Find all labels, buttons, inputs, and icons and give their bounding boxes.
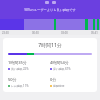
staticText: 浅い睡眠 22%	[11, 67, 29, 71]
staticText: 50分	[8, 77, 17, 82]
button[interactable]: 4時間54分	[50, 60, 92, 71]
button[interactable]: 50分	[8, 77, 50, 88]
staticText: 深い睡眠 67%	[53, 67, 71, 71]
button[interactable]: 1時間35分	[8, 60, 50, 71]
staticText: 4時間54分	[50, 60, 69, 65]
button[interactable]: 7時間11分	[3, 38, 97, 92]
button[interactable]: 0分	[50, 77, 92, 88]
staticText: 00:50	[32, 31, 39, 35]
staticText: レム睡眠 11%	[11, 84, 29, 88]
staticText: 98%のユーザーよりも良い睡眠です	[0, 8, 100, 12]
staticText: 1時間35分	[8, 60, 27, 65]
staticText: 05:41	[91, 31, 98, 35]
staticText: 覚醒時間	[53, 84, 65, 88]
button[interactable]: Tab	[45, 1, 49, 4]
button[interactable]: Tab	[52, 1, 56, 4]
staticText: 03:00	[61, 31, 68, 35]
staticText: 7時間11分	[8, 42, 92, 49]
staticText: 23:30	[2, 31, 9, 35]
staticText: 0分	[50, 77, 57, 82]
